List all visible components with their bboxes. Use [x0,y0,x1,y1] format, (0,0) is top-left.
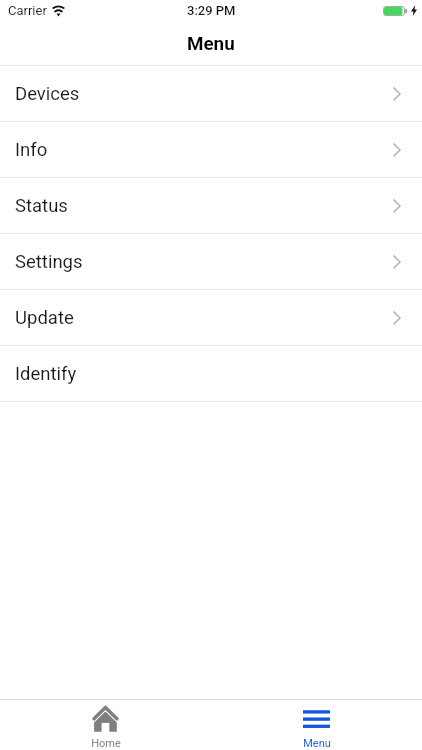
button[interactable]: Home [0,700,211,750]
staticText: Update [15,307,74,329]
staticText: Menu [187,33,235,55]
staticText: 3:29 PM [187,3,236,18]
staticText: Carrier [8,3,47,18]
button[interactable]: Identify [0,346,422,401]
button[interactable]: Status [0,178,422,233]
button[interactable]: Settings [0,234,422,289]
staticText: Devices [15,83,80,105]
staticText: Settings [15,251,83,273]
button[interactable]: Update [0,290,422,345]
staticText: Info [15,139,48,161]
staticText: Menu [303,737,331,750]
staticText: Identify [15,363,77,385]
button[interactable]: Menu [211,700,422,750]
staticText: Home [91,737,121,750]
button[interactable]: Devices [0,66,422,121]
staticText: Status [15,195,68,217]
button[interactable]: Info [0,122,422,177]
